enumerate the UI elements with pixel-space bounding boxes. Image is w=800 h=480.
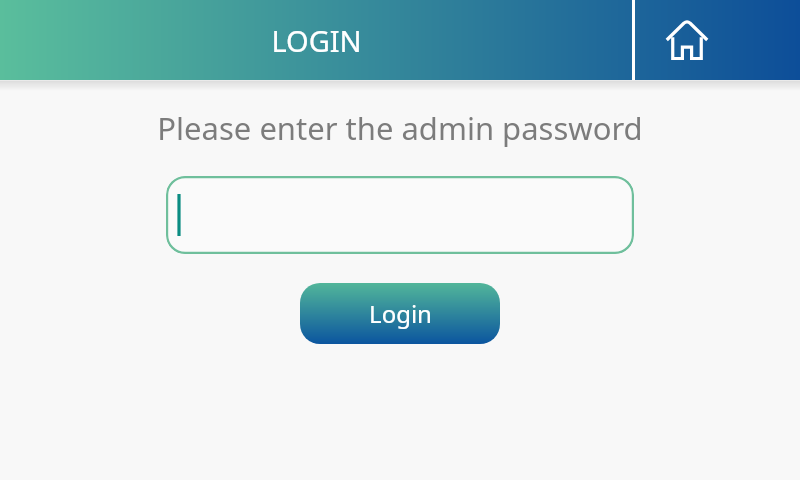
button[interactable]	[166, 176, 634, 254]
button[interactable]: Login	[300, 283, 500, 344]
button[interactable]: LOGIN	[0, 0, 632, 80]
staticText: Please enter the admin password	[157, 107, 643, 149]
button[interactable]: Home	[635, 0, 800, 80]
staticText: LOGIN	[271, 21, 362, 60]
staticText: Login	[369, 297, 432, 330]
